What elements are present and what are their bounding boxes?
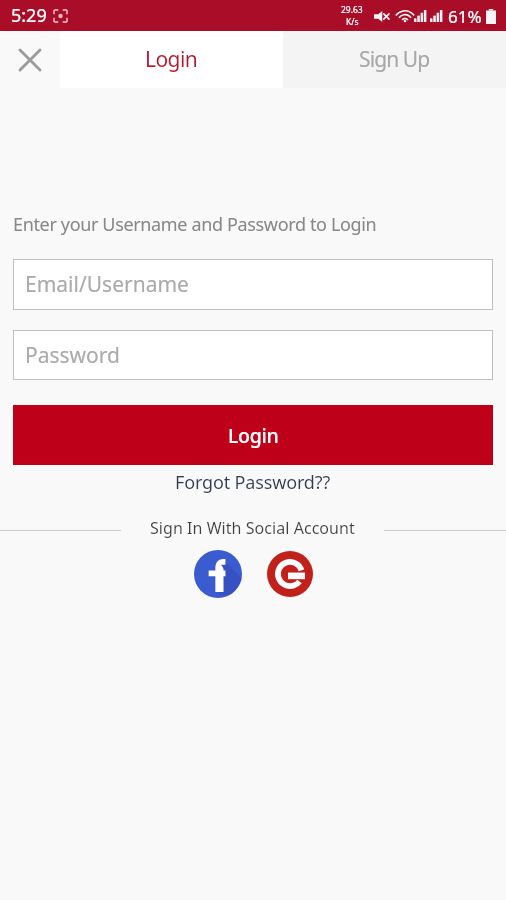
staticText: Sign In With Social Account [150, 517, 355, 539]
button[interactable]: Forgot Password?? [167, 466, 339, 499]
staticText: Login [228, 422, 279, 449]
button[interactable]: Email/Username [13, 259, 493, 310]
staticText: K/s [346, 16, 359, 28]
button[interactable]: Password [13, 330, 493, 380]
button[interactable]: Sign in with Facebook [194, 550, 242, 598]
staticText: Password [25, 341, 120, 370]
staticText: 29.63 [341, 4, 363, 16]
staticText: Login [145, 45, 198, 74]
button[interactable]: Close [0, 31, 60, 88]
button[interactable]: Login [60, 31, 283, 88]
button[interactable]: Sign Up [283, 31, 506, 88]
staticText: 5:29 [11, 3, 47, 28]
staticText: Email/Username [25, 270, 189, 299]
staticText: 61% [448, 5, 482, 28]
staticText: Sign Up [359, 45, 430, 74]
button[interactable]: Sign in with Google [267, 551, 313, 597]
button[interactable]: Login [13, 405, 493, 465]
staticText: Enter your Username and Password to Logi… [13, 212, 377, 237]
